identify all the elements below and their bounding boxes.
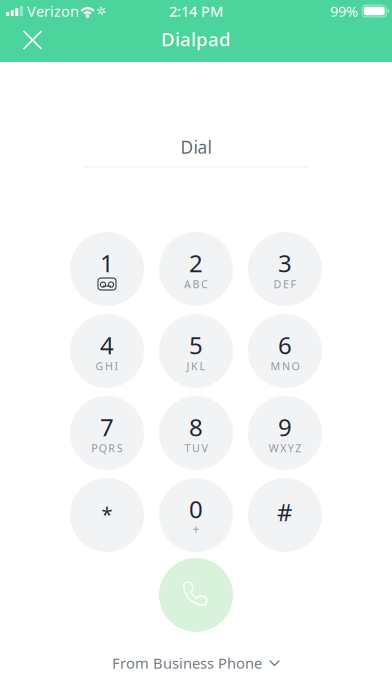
button[interactable]: 9 bbox=[248, 396, 322, 470]
staticText: 99% bbox=[330, 1, 358, 21]
staticText: 1 bbox=[100, 247, 114, 279]
staticText: GHI bbox=[95, 359, 118, 373]
button[interactable]: 6 bbox=[248, 314, 322, 388]
button[interactable]: Close bbox=[10, 18, 54, 62]
button[interactable]: # bbox=[248, 478, 322, 552]
staticText: 2:14 PM bbox=[169, 1, 223, 21]
staticText: 5 bbox=[189, 329, 203, 361]
button[interactable]: * bbox=[70, 478, 144, 552]
button[interactable]: 1 bbox=[70, 232, 144, 306]
staticText: 7 bbox=[100, 411, 114, 443]
staticText: 0 bbox=[189, 493, 203, 525]
staticText: DEF bbox=[273, 277, 296, 291]
button[interactable]: 5 bbox=[159, 314, 233, 388]
button[interactable]: 0 bbox=[159, 478, 233, 552]
staticText: TUV bbox=[184, 441, 207, 455]
button[interactable]: 3 bbox=[248, 232, 322, 306]
staticText: From Business Phone bbox=[112, 653, 262, 673]
staticText: Dial bbox=[180, 135, 211, 158]
staticText: ABC bbox=[184, 277, 208, 291]
staticText: Verizon bbox=[27, 1, 79, 21]
staticText: + bbox=[192, 521, 199, 537]
staticText: 9 bbox=[278, 411, 292, 443]
button[interactable]: From Business Phone bbox=[98, 644, 294, 682]
button[interactable]: 7 bbox=[70, 396, 144, 470]
staticText: PQRS bbox=[91, 441, 123, 455]
button[interactable]: 4 bbox=[70, 314, 144, 388]
staticText: 6 bbox=[278, 329, 292, 361]
button[interactable]: Call bbox=[159, 558, 233, 632]
button[interactable]: 2 bbox=[159, 232, 233, 306]
staticText: JKL bbox=[186, 359, 205, 373]
staticText: WXYZ bbox=[269, 441, 301, 455]
staticText: * bbox=[101, 501, 112, 527]
staticText: 3 bbox=[278, 247, 292, 279]
staticText: MNO bbox=[270, 359, 299, 373]
staticText: # bbox=[277, 496, 293, 528]
staticText: 2 bbox=[189, 247, 203, 279]
button[interactable]: 8 bbox=[159, 396, 233, 470]
staticText: 8 bbox=[189, 411, 203, 443]
staticText: 4 bbox=[100, 329, 114, 361]
staticText: Dialpad bbox=[161, 27, 231, 51]
